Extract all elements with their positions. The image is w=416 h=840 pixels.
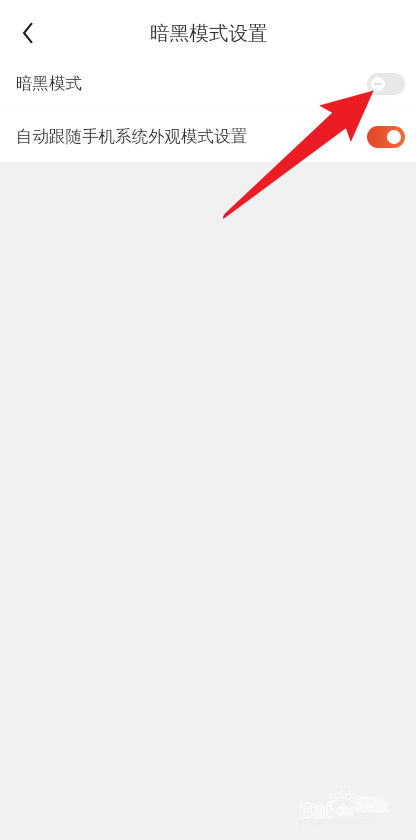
staticText: du <box>336 800 354 819</box>
staticText: 自动跟随手机系统外观模式设置 <box>16 126 247 147</box>
button[interactable]: 自动跟随手机系统外观模式设置 <box>0 110 416 162</box>
staticText: 暗黑模式 <box>16 73 82 94</box>
button[interactable]: Toggle on <box>367 126 405 148</box>
staticText: 经验 <box>356 796 388 816</box>
button[interactable]: 暗黑模式 <box>0 58 416 109</box>
button[interactable]: Toggle off <box>367 73 405 95</box>
staticText: Bai <box>299 796 332 825</box>
staticText: jingyan.baidu.com <box>299 814 377 826</box>
button[interactable]: Back <box>6 9 50 57</box>
staticText: 暗黑模式设置 <box>150 21 268 46</box>
